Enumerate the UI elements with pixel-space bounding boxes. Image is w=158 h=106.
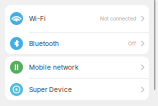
staticText: Not connected xyxy=(100,15,136,22)
staticText: Mobile network xyxy=(29,63,79,71)
staticText: Super Device xyxy=(29,85,72,93)
staticText: Off xyxy=(128,40,136,47)
button[interactable]: Bluetooth xyxy=(5,33,149,54)
button[interactable]: Wi-Fi xyxy=(5,5,149,32)
button[interactable]: Super Device xyxy=(5,79,149,100)
button[interactable]: Mobile network xyxy=(5,56,149,78)
staticText: Bluetooth xyxy=(29,39,59,47)
staticText: Wi-Fi xyxy=(29,14,46,22)
